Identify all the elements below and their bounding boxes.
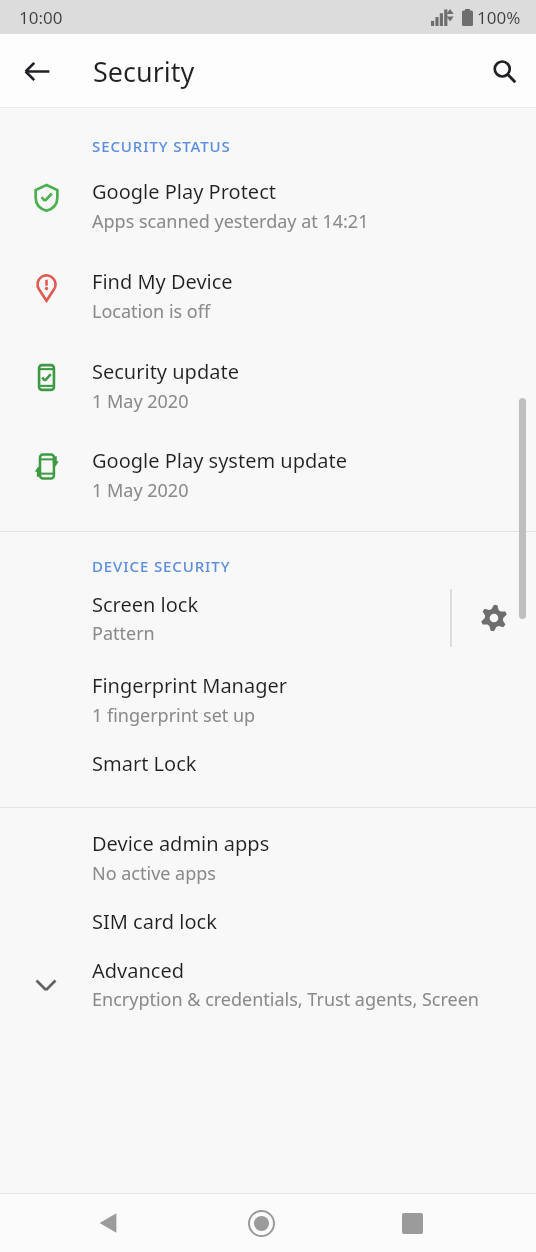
staticText: Fingerprint Manager xyxy=(92,672,288,699)
button[interactable]: Search xyxy=(480,47,528,95)
staticText: DEVICE SECURITY xyxy=(92,556,231,576)
staticText: Advanced xyxy=(92,957,184,984)
button[interactable]: Google Play system update xyxy=(0,414,536,503)
staticText: 1 May 2020 xyxy=(92,478,189,503)
button[interactable]: Screen lock settings xyxy=(452,576,536,660)
button[interactable]: Back xyxy=(13,47,61,95)
staticText: Google Play Protect xyxy=(92,178,276,205)
staticText: 10:00 xyxy=(19,6,63,29)
button[interactable]: Screen lock xyxy=(0,576,536,660)
button[interactable]: Google Play Protect xyxy=(0,156,536,234)
staticText: 1 fingerprint set up xyxy=(92,703,256,728)
staticText: Security update xyxy=(92,358,239,385)
staticText: Device admin apps xyxy=(92,830,270,857)
staticText: Encryption & credentials, Trust agents, … xyxy=(92,987,526,1012)
button[interactable]: SIM card lock xyxy=(0,886,536,935)
staticText: SIM card lock xyxy=(92,908,217,935)
button[interactable]: Recents xyxy=(388,1199,436,1247)
staticText: Screen lock xyxy=(92,591,199,618)
staticText: Google Play system update xyxy=(92,447,348,474)
button[interactable]: Fingerprint Manager xyxy=(0,660,536,728)
button[interactable]: Advanced xyxy=(0,957,536,1012)
staticText: Security xyxy=(93,53,195,90)
staticText: No active apps xyxy=(92,861,216,886)
button[interactable]: Smart Lock xyxy=(0,728,536,777)
button[interactable]: Back xyxy=(84,1199,132,1247)
button[interactable]: Security update xyxy=(0,324,536,414)
staticText: Find My Device xyxy=(92,268,233,295)
button[interactable]: Find My Device xyxy=(0,234,536,324)
button[interactable]: Home xyxy=(237,1199,285,1247)
staticText: Apps scanned yesterday at 14:21 xyxy=(92,209,369,234)
button[interactable]: Device admin apps xyxy=(0,808,536,886)
staticText: Location is off xyxy=(92,299,211,324)
staticText: Pattern xyxy=(92,621,155,646)
staticText: Smart Lock xyxy=(92,750,197,777)
staticText: SECURITY STATUS xyxy=(92,136,231,156)
staticText: 100% xyxy=(477,6,521,29)
staticText: 1 May 2020 xyxy=(92,389,189,414)
